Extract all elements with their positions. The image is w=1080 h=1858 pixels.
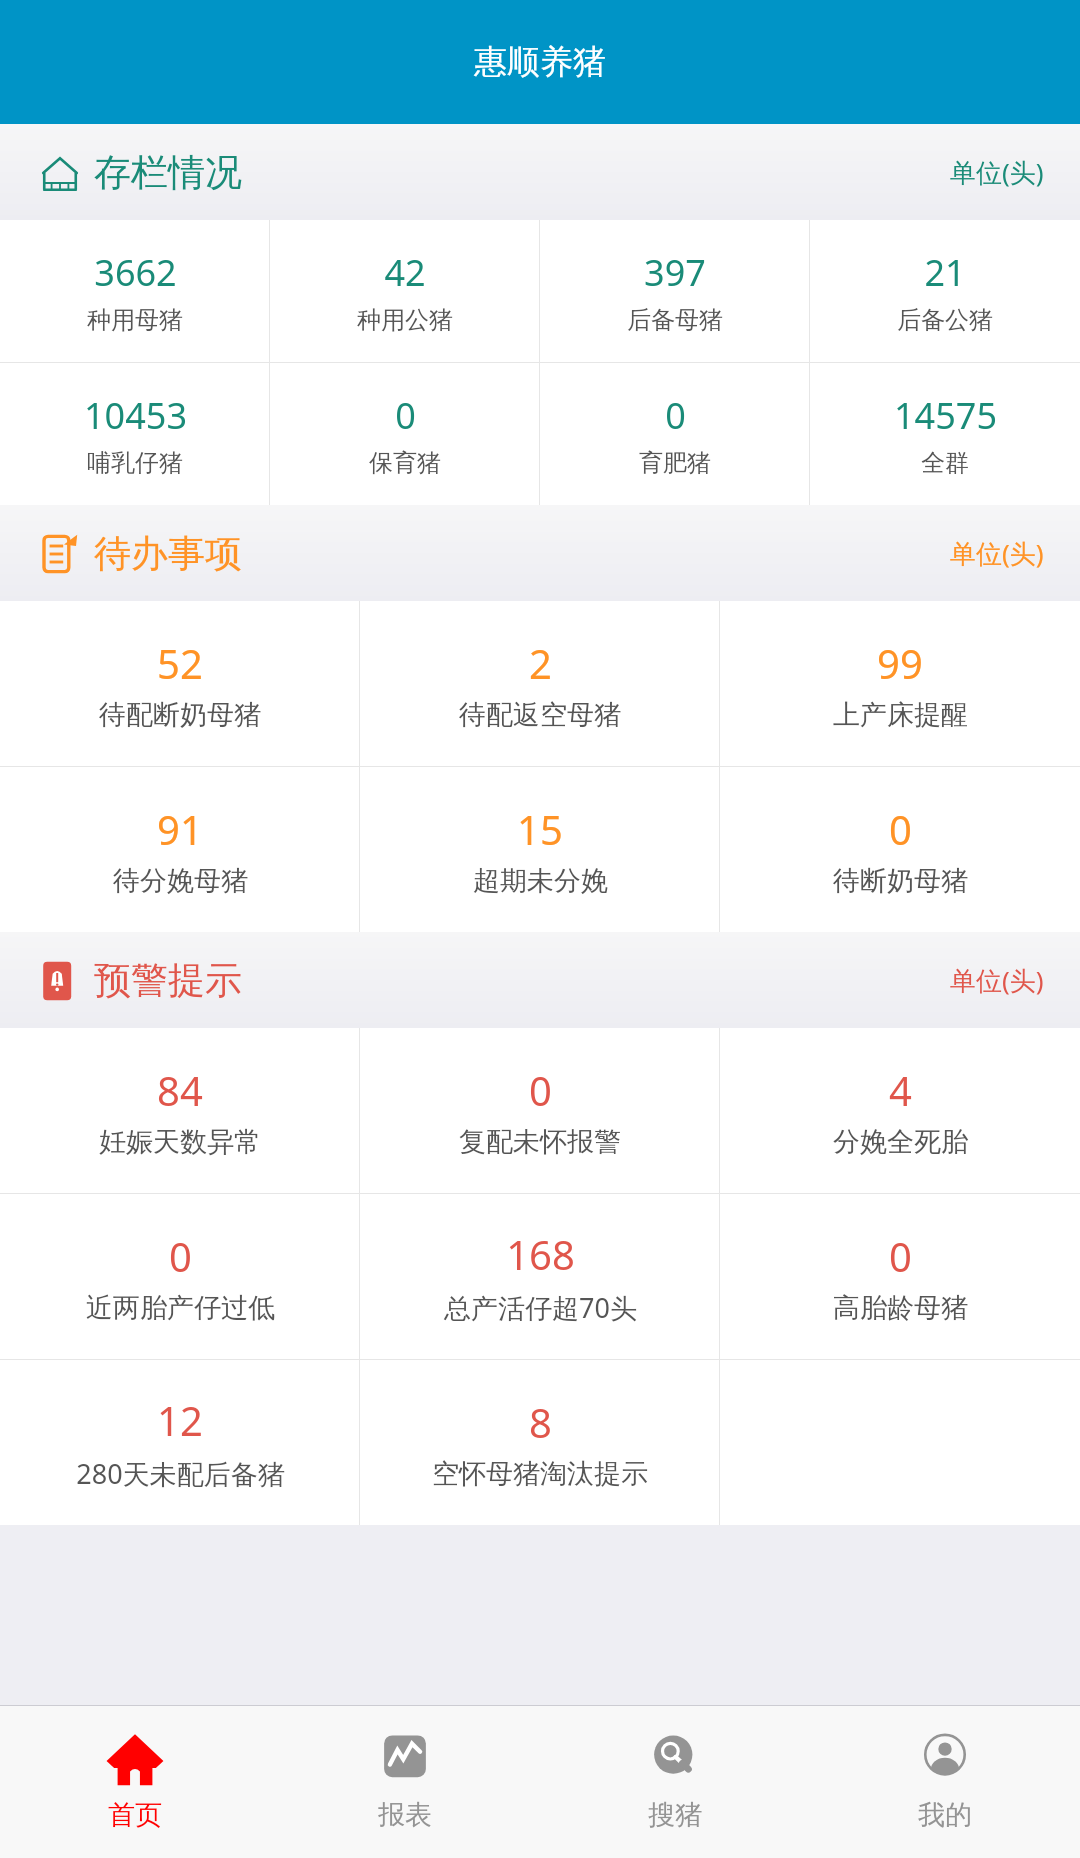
button[interactable]: 8 xyxy=(360,1360,720,1525)
staticText: 单位(头) xyxy=(950,535,1044,571)
staticText: 存栏情况 xyxy=(94,149,242,196)
staticText: 4 xyxy=(889,1063,912,1117)
staticText: 报表 xyxy=(378,1798,432,1832)
staticText: 8 xyxy=(529,1395,552,1449)
staticText: 首页 xyxy=(108,1798,162,1832)
staticText: 2 xyxy=(529,636,552,690)
staticText: 空怀母猪淘汰提示 xyxy=(432,1457,648,1491)
staticText: 52 xyxy=(157,636,203,690)
staticText: 搜猪 xyxy=(648,1798,702,1832)
staticText: 惠顺养猪 xyxy=(474,41,606,83)
staticText: 42 xyxy=(384,248,426,297)
staticText: 10453 xyxy=(84,391,187,440)
button[interactable]: To-do xyxy=(0,505,1080,601)
staticText: 总产活仔超70头 xyxy=(444,1289,637,1326)
staticText: 近两胎产仔过低 xyxy=(86,1291,275,1325)
staticText: 后备母猪 xyxy=(627,305,723,335)
button[interactable]: 0 xyxy=(720,767,1080,932)
button[interactable]: 91 xyxy=(0,767,360,932)
button[interactable]: Reports xyxy=(270,1706,540,1858)
staticText: 91 xyxy=(157,802,203,856)
other: Alerts xyxy=(40,961,80,1001)
staticText: 14575 xyxy=(894,391,997,440)
button[interactable]: 12 xyxy=(0,1360,360,1525)
staticText: 0 xyxy=(169,1229,192,1283)
staticText: 哺乳仔猪 xyxy=(87,448,183,478)
staticText: 我的 xyxy=(918,1798,972,1832)
button[interactable]: 3662 xyxy=(0,220,270,362)
staticText: 0 xyxy=(889,1229,912,1283)
button[interactable]: Inventory xyxy=(0,124,1080,220)
button[interactable]: 0 xyxy=(720,1194,1080,1359)
button[interactable]: Search pigs xyxy=(540,1706,810,1858)
staticText: 单位(头) xyxy=(950,154,1044,190)
staticText: 待配断奶母猪 xyxy=(99,698,261,732)
other: Search pigs xyxy=(646,1732,704,1790)
staticText: 全群 xyxy=(921,448,969,478)
staticText: 0 xyxy=(395,391,416,440)
staticText: 21 xyxy=(924,248,966,297)
staticText: 育肥猪 xyxy=(639,448,711,478)
staticText: 待分娩母猪 xyxy=(113,864,248,898)
staticText: 种用公猪 xyxy=(357,305,453,335)
staticText: 复配未怀报警 xyxy=(459,1125,621,1159)
button[interactable]: 42 xyxy=(270,220,540,362)
button[interactable]: 21 xyxy=(810,220,1080,362)
button[interactable]: Home xyxy=(0,1706,270,1858)
button[interactable]: My account xyxy=(810,1706,1080,1858)
staticText: 99 xyxy=(877,636,923,690)
other: Home xyxy=(106,1732,164,1790)
button[interactable]: 4 xyxy=(720,1028,1080,1193)
button[interactable]: 14575 xyxy=(810,363,1080,505)
other: Inventory xyxy=(40,153,80,193)
other: To-do xyxy=(40,534,80,574)
button[interactable]: 0 xyxy=(360,1028,720,1193)
button[interactable]: 10453 xyxy=(0,363,270,505)
staticText: 分娩全死胎 xyxy=(833,1125,968,1159)
button[interactable]: 99 xyxy=(720,601,1080,766)
button[interactable]: 0 xyxy=(540,363,810,505)
staticText: 待配返空母猪 xyxy=(459,698,621,732)
staticText: 高胎龄母猪 xyxy=(833,1291,968,1325)
button[interactable]: 2 xyxy=(360,601,720,766)
staticText: 上产床提醒 xyxy=(833,698,968,732)
staticText: 保育猪 xyxy=(369,448,441,478)
staticText: 15 xyxy=(517,802,563,856)
staticText: 单位(头) xyxy=(950,962,1044,998)
staticText: 3662 xyxy=(94,248,177,297)
button[interactable]: Alerts xyxy=(0,932,1080,1028)
button[interactable]: 397 xyxy=(540,220,810,362)
staticText: 超期未分娩 xyxy=(473,864,608,898)
other: Reports xyxy=(376,1732,434,1790)
button[interactable]: 0 xyxy=(270,363,540,505)
staticText: 280天未配后备猪 xyxy=(76,1455,285,1492)
staticText: 待断奶母猪 xyxy=(833,864,968,898)
staticText: 168 xyxy=(506,1227,575,1281)
staticText: 预警提示 xyxy=(94,957,242,1004)
staticText: 妊娠天数异常 xyxy=(99,1125,261,1159)
staticText: 待办事项 xyxy=(94,530,242,577)
staticText: 0 xyxy=(529,1063,552,1117)
staticText: 种用母猪 xyxy=(87,305,183,335)
button[interactable]: 15 xyxy=(360,767,720,932)
button[interactable]: 84 xyxy=(0,1028,360,1193)
staticText: 12 xyxy=(157,1393,203,1447)
staticText: 后备公猪 xyxy=(897,305,993,335)
staticText: 0 xyxy=(665,391,686,440)
staticText: 84 xyxy=(157,1063,203,1117)
button[interactable]: 52 xyxy=(0,601,360,766)
button[interactable]: 0 xyxy=(0,1194,360,1359)
staticText: 0 xyxy=(889,802,912,856)
button[interactable]: 168 xyxy=(360,1194,720,1359)
staticText: 397 xyxy=(644,248,706,297)
other: My account xyxy=(916,1732,974,1790)
